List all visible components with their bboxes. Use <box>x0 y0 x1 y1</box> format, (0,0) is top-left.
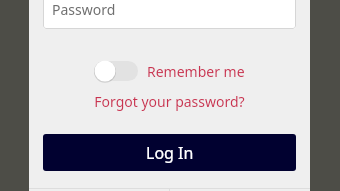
button[interactable]: Forgot your password? <box>29 92 310 111</box>
button[interactable]: Remember me <box>147 62 245 81</box>
staticText: Log In <box>146 142 194 164</box>
button[interactable]: Password <box>43 0 296 29</box>
staticText: Password <box>52 0 116 19</box>
button[interactable]: Remember me toggle <box>94 60 138 82</box>
staticText: Forgot your password? <box>94 92 245 111</box>
button[interactable]: Log In <box>43 134 296 171</box>
